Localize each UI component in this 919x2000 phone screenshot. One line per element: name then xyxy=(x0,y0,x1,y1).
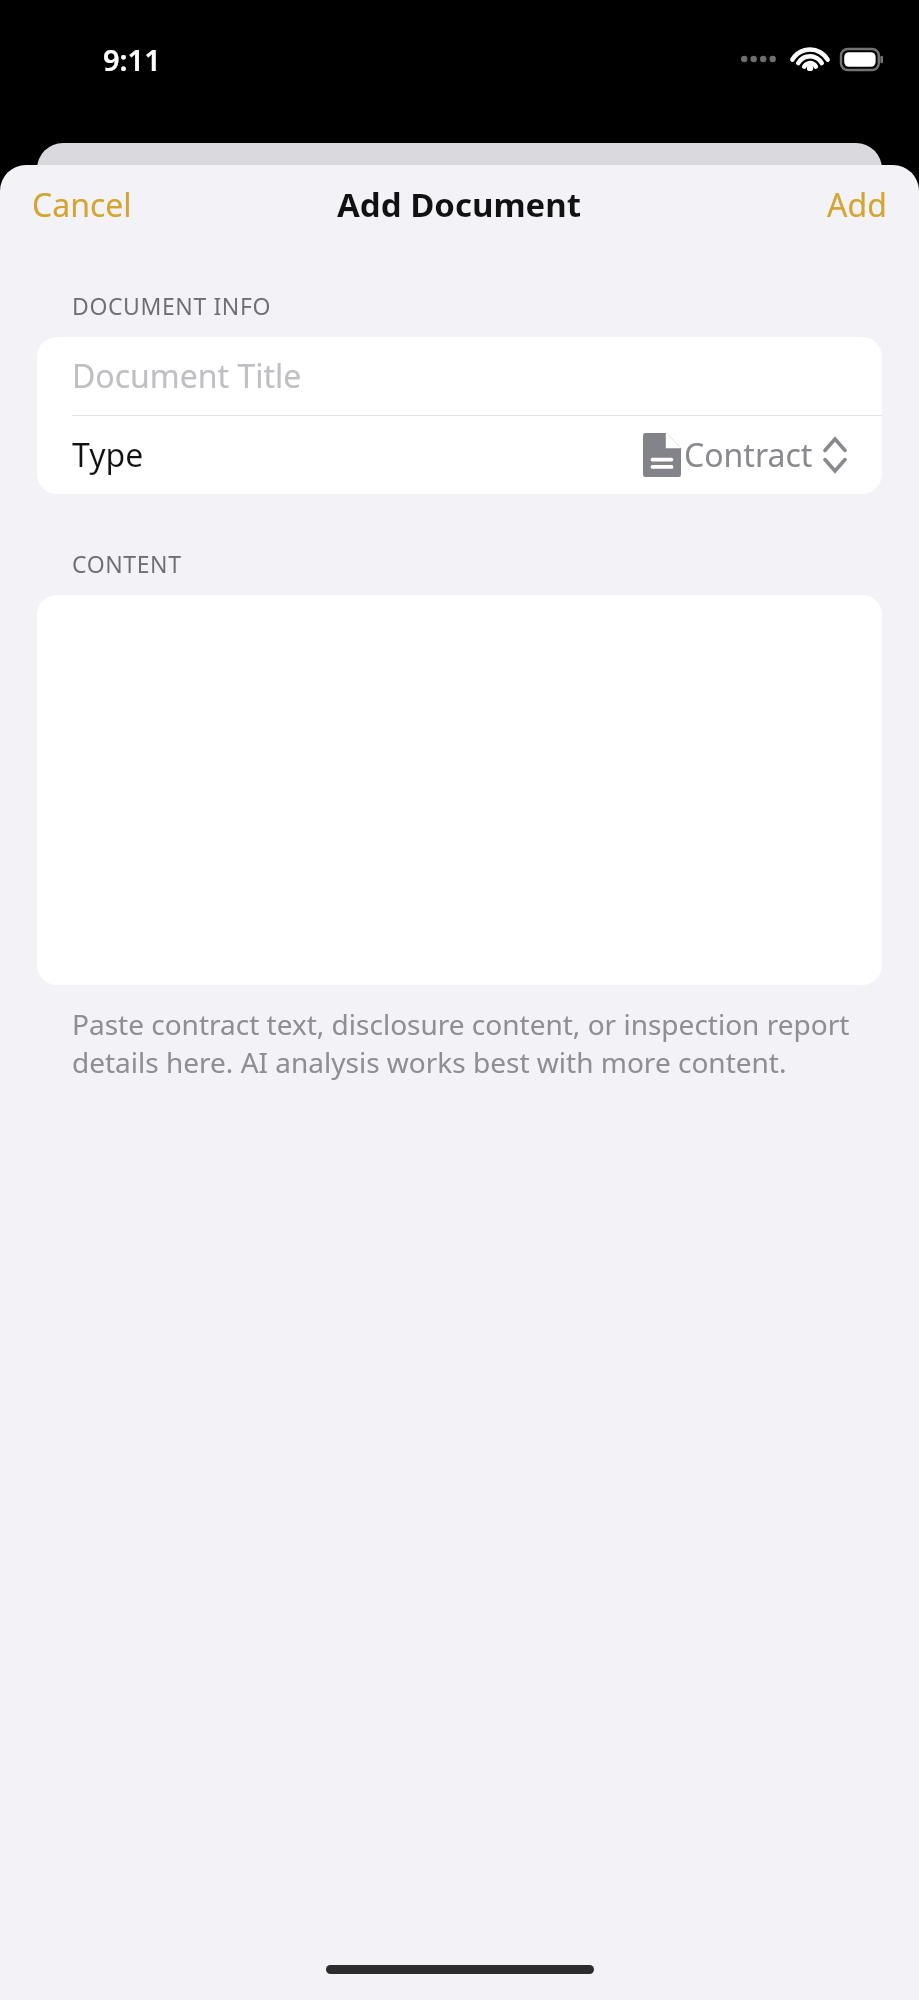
staticText: Contract xyxy=(684,433,813,477)
staticText: CONTENT xyxy=(72,548,182,579)
button[interactable]: Cancel xyxy=(14,175,150,235)
button[interactable]: Document Title xyxy=(37,337,882,415)
staticText: DOCUMENT INFO xyxy=(72,290,271,321)
staticText: Type xyxy=(72,433,144,477)
staticText: 9:11 xyxy=(103,40,161,79)
staticText: Document Title xyxy=(72,354,302,398)
staticText: Add xyxy=(827,183,887,227)
staticText: Cancel xyxy=(32,183,132,227)
staticText: Paste contract text, disclosure content,… xyxy=(72,1005,853,1081)
button[interactable]: Add xyxy=(809,175,905,235)
staticText: Add Document xyxy=(337,182,582,227)
button[interactable]: Type xyxy=(37,416,882,494)
